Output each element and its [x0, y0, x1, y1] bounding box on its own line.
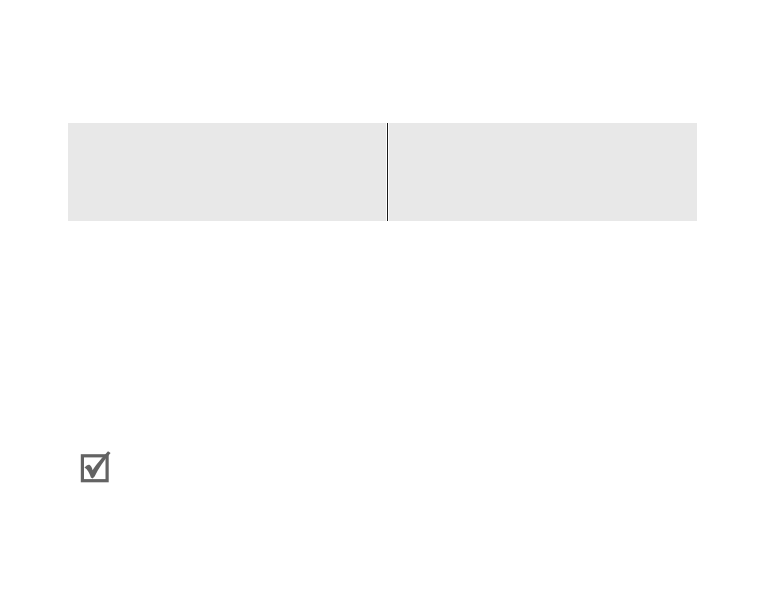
button[interactable]: Text input field: [68, 123, 697, 221]
button[interactable]: Checked check box: [78, 448, 114, 484]
